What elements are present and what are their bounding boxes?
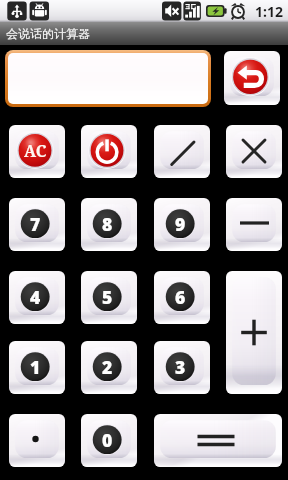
button[interactable]: Power: [81, 125, 137, 178]
staticText: 7: [30, 212, 41, 236]
staticText: 0: [102, 428, 113, 452]
staticText: 会说话的计算器: [6, 26, 90, 41]
button[interactable]: 9: [154, 198, 210, 251]
button[interactable]: 2: [81, 341, 137, 394]
staticText: 5: [102, 285, 113, 309]
button[interactable]: 6: [154, 271, 210, 324]
staticText: 3: [175, 355, 186, 379]
button[interactable]: 4: [9, 271, 65, 324]
staticText: 1: [30, 355, 41, 379]
button[interactable]: Minus: [226, 198, 282, 251]
button[interactable]: Plus: [226, 271, 282, 394]
button[interactable]: Decimal point: [9, 414, 65, 467]
button[interactable]: AC: [9, 125, 65, 178]
staticText: 8: [102, 212, 113, 236]
button[interactable]: 0: [81, 414, 137, 467]
button[interactable]: Divide: [154, 125, 210, 178]
staticText: 4: [30, 285, 41, 309]
button[interactable]: 8: [81, 198, 137, 251]
staticText: 9: [175, 212, 186, 236]
button[interactable]: Backspace: [224, 51, 280, 105]
staticText: 2: [102, 355, 113, 379]
staticText: 1:12: [255, 2, 283, 21]
button[interactable]: 3: [154, 341, 210, 394]
button[interactable]: Multiply: [226, 125, 282, 178]
button[interactable]: 5: [81, 271, 137, 324]
staticText: 6: [175, 285, 186, 309]
button[interactable]: 1: [9, 341, 65, 394]
button[interactable]: 7: [9, 198, 65, 251]
staticText: AC: [24, 140, 47, 162]
button[interactable]: Equals: [154, 414, 282, 467]
